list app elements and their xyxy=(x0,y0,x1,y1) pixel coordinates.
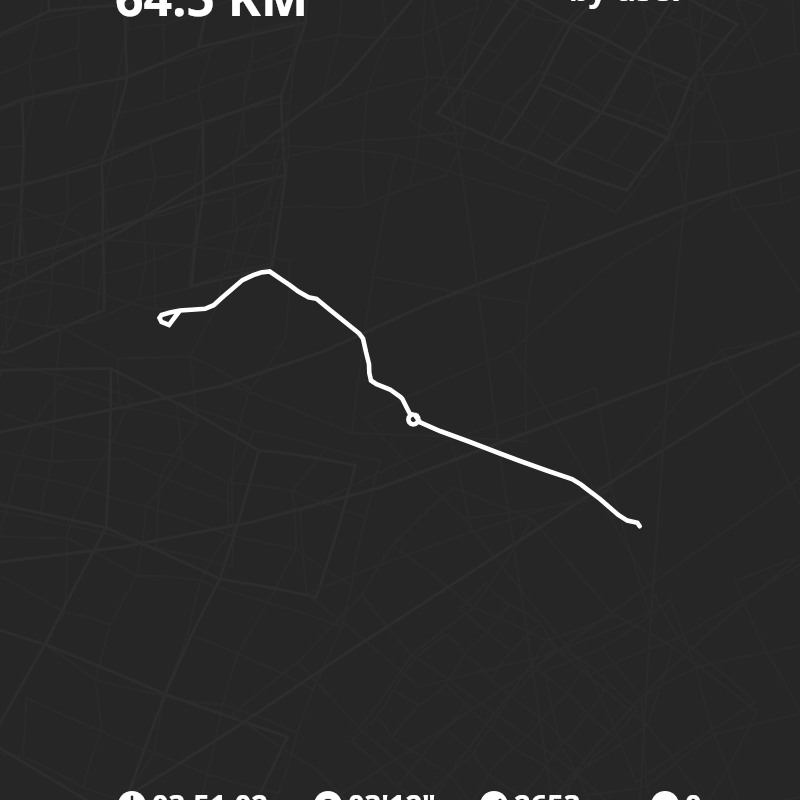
staticText: by user xyxy=(569,0,686,11)
staticText: 64.5 KM xyxy=(115,0,309,31)
staticText: 03:51:02 xyxy=(152,785,268,800)
button[interactable]: Duration 03:51:02 xyxy=(118,785,268,800)
button[interactable]: Route map xyxy=(0,0,800,800)
staticText: 2653 xyxy=(514,785,581,800)
button[interactable]: Elevation gain 0 xyxy=(651,785,702,800)
staticText: 0 xyxy=(685,785,702,800)
staticText: 03'12" xyxy=(348,785,436,800)
button[interactable]: Average pace 03'12" xyxy=(314,785,436,800)
button[interactable]: Calories 2653 xyxy=(480,785,581,800)
